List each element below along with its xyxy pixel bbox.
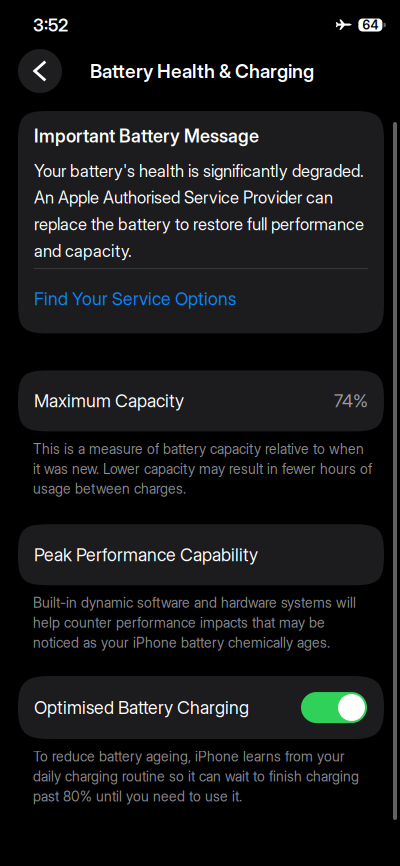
staticText: Important Battery Message <box>34 125 259 147</box>
staticText: To reduce battery ageing, iPhone learns … <box>33 748 359 805</box>
staticText: Optimised Battery Charging <box>34 697 249 718</box>
button[interactable]: Back <box>18 49 62 93</box>
staticText: Find Your Service Options <box>34 288 236 309</box>
staticText: Built-in dynamic software and hardware s… <box>33 594 356 651</box>
button[interactable]: Optimised Battery Charging <box>0 651 384 739</box>
button[interactable]: Find Your Service Options <box>34 288 368 309</box>
staticText: This is a measure of battery capacity re… <box>33 440 372 497</box>
staticText: Your battery's health is significantly d… <box>34 161 364 261</box>
staticText: Maximum Capacity <box>34 390 184 412</box>
staticText: 74% <box>334 390 368 412</box>
staticText: Battery Health & Charging <box>90 59 314 83</box>
staticText: Peak Performance Capability <box>34 544 258 565</box>
staticText: 3:52 <box>33 14 68 36</box>
staticText: 64 <box>362 17 378 32</box>
